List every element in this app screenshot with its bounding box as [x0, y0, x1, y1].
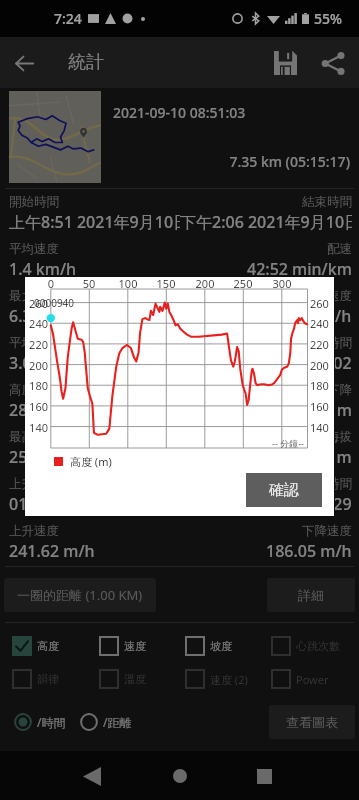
button[interactable]: Recent apps	[241, 753, 287, 799]
button[interactable]: 一圈的距離 (1.00 KM)	[4, 578, 156, 612]
staticText: 0	[41, 276, 61, 291]
button[interactable]: 查看圖表	[269, 705, 355, 739]
staticText: 160	[310, 399, 332, 414]
staticText: 上升時間	[9, 476, 59, 492]
staticText: 50	[79, 276, 99, 291]
button[interactable]: 最高海拔	[0, 425, 359, 472]
staticText: 結束時間	[302, 194, 352, 210]
button[interactable]: Share	[309, 39, 357, 87]
staticText: 高度上升	[9, 382, 59, 398]
button[interactable]: /距離	[80, 711, 132, 733]
staticText: 平均速度	[9, 241, 59, 257]
button[interactable]: 平均移動速度	[0, 331, 359, 378]
staticText: 260	[310, 296, 332, 311]
staticText: 7:24	[54, 9, 82, 28]
button[interactable]: 開始時間	[0, 190, 359, 237]
staticText: 133 m	[305, 446, 352, 468]
staticText: 平均移動速度	[9, 335, 84, 351]
staticText: 心跳次數	[296, 639, 340, 653]
staticText: 0000940	[34, 296, 75, 310]
staticText: 186.05 m/h	[266, 540, 352, 562]
staticText: 配速	[327, 241, 352, 257]
staticText: 最小速度	[302, 288, 352, 304]
staticText: 200	[195, 276, 215, 291]
staticText: 確認	[269, 481, 299, 500]
staticText: 韻律	[37, 672, 59, 686]
button[interactable]: 韻律	[12, 667, 99, 691]
staticText: 上升速度	[9, 523, 59, 539]
staticText: 速度 (2)	[210, 672, 248, 687]
staticText: 200	[310, 358, 332, 373]
staticText: 01:10:01	[9, 493, 73, 515]
staticText: /距離	[103, 714, 132, 730]
button[interactable]: 確認	[246, 473, 322, 507]
staticText: 下降速度	[302, 523, 352, 539]
staticText: 高度	[37, 639, 59, 653]
button[interactable]: Back	[0, 39, 48, 87]
button[interactable]: Back	[69, 753, 115, 799]
staticText: 01:12:29	[288, 493, 352, 515]
staticText: 220	[25, 337, 48, 352]
staticText: 300	[272, 276, 292, 291]
staticText: /時間	[37, 714, 66, 730]
staticText: 220	[310, 337, 332, 352]
staticText: 140	[310, 420, 332, 435]
button[interactable]: /時間	[14, 711, 66, 733]
button[interactable]: 高度上升	[0, 378, 359, 425]
staticText: 溫度	[124, 672, 146, 686]
button[interactable]: Power	[271, 667, 357, 691]
staticText: Power	[296, 672, 329, 687]
staticText: 55%	[314, 9, 342, 28]
staticText: 最高海拔	[9, 429, 59, 445]
staticText: 1.4 km/h	[9, 258, 77, 280]
button[interactable]: 高度	[12, 634, 99, 658]
staticText: 上午8:51 2021年9月10日	[9, 211, 180, 233]
button[interactable]: 最大速度	[0, 284, 359, 331]
staticText: 坡度	[210, 639, 232, 653]
staticText: 高度 (m)	[70, 454, 112, 469]
staticText: 240	[25, 316, 48, 331]
staticText: 2021-09-10 08:51:03	[113, 103, 246, 122]
staticText: 移動時間	[302, 335, 352, 351]
staticText: 259 m	[9, 446, 56, 468]
staticText: 3.05 km/h	[9, 352, 86, 374]
button[interactable]: Home	[157, 753, 203, 799]
staticText: 速度	[124, 639, 146, 653]
staticText: 高度下降	[302, 382, 352, 398]
button[interactable]: 溫度	[99, 667, 185, 691]
staticText: 下午2:06 2021年9月10日	[180, 211, 352, 233]
button[interactable]: 平均速度	[0, 237, 359, 284]
staticText: 240	[310, 316, 332, 331]
staticText: 180	[310, 378, 332, 393]
staticText: 160	[25, 399, 48, 414]
button[interactable]: Save	[261, 39, 309, 87]
button[interactable]: 心跳次數	[271, 634, 357, 658]
staticText: 100	[118, 276, 138, 291]
staticText: 2830 m	[296, 399, 352, 421]
staticText: 6.35 km/h	[9, 305, 86, 327]
staticText: 7.35 km (05:15:17)	[113, 152, 350, 171]
button[interactable]: 詳細	[267, 578, 355, 612]
staticText: 241.62 m/h	[9, 540, 95, 562]
staticText: 180	[25, 378, 48, 393]
staticText: 200	[25, 358, 48, 373]
button[interactable]: 坡度	[185, 634, 271, 658]
staticText: 查看圖表	[286, 714, 338, 730]
staticText: 詳細	[298, 587, 324, 603]
staticText: 0.00 km/h	[275, 305, 352, 327]
staticText: 2818 m	[9, 399, 65, 421]
staticText: 150	[156, 276, 176, 291]
staticText: -- 分鐘--	[272, 437, 304, 449]
staticText: 開始時間	[9, 194, 59, 210]
staticText: 統計	[68, 51, 104, 74]
button[interactable]: 速度	[99, 634, 185, 658]
staticText: 最大速度	[9, 288, 59, 304]
staticText: 下降時間	[302, 476, 352, 492]
staticText: 250	[233, 276, 253, 291]
button[interactable]: 速度 (2)	[185, 667, 271, 691]
button[interactable]: 上升時間	[0, 472, 359, 519]
staticText: 260	[25, 296, 48, 311]
staticText: 最低海拔	[302, 429, 352, 445]
staticText: 一圈的距離 (1.00 KM)	[17, 586, 143, 604]
button[interactable]: 上升速度	[0, 519, 359, 566]
